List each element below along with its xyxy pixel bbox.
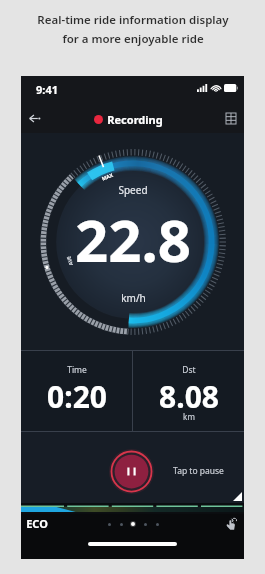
staticText: km/h — [121, 291, 146, 305]
button[interactable]: Recording — [92, 110, 165, 129]
staticText: Speed — [118, 183, 148, 197]
staticText: Time — [67, 364, 87, 376]
staticText: Recording — [107, 112, 163, 127]
button[interactable]: Back — [22, 106, 46, 130]
staticText: Real-time ride information display — [37, 12, 229, 28]
staticText: ECO — [26, 516, 48, 531]
staticText: Dst — [182, 364, 196, 376]
button[interactable]: Gesture control — [223, 515, 241, 533]
button[interactable]: Dst — [133, 351, 244, 431]
staticText: for a more enjoyable ride — [62, 31, 204, 47]
button[interactable]: Time — [21, 351, 132, 431]
button[interactable]: Layout grid — [220, 107, 242, 129]
staticText: 9:41 — [36, 82, 58, 97]
button[interactable] — [127, 518, 139, 530]
staticText: Tap to pause — [173, 465, 224, 477]
staticText: MAX — [101, 172, 114, 183]
staticText: km — [183, 411, 195, 422]
button[interactable] — [151, 518, 163, 530]
button[interactable] — [139, 518, 151, 530]
staticText: AVE — [65, 255, 75, 266]
button[interactable] — [103, 518, 115, 530]
button[interactable] — [115, 518, 127, 530]
button[interactable]: Pause — [109, 449, 154, 494]
staticText: 8.08 — [159, 376, 219, 417]
staticText: 22.8 — [75, 200, 191, 279]
staticText: 0:20 — [47, 376, 107, 417]
